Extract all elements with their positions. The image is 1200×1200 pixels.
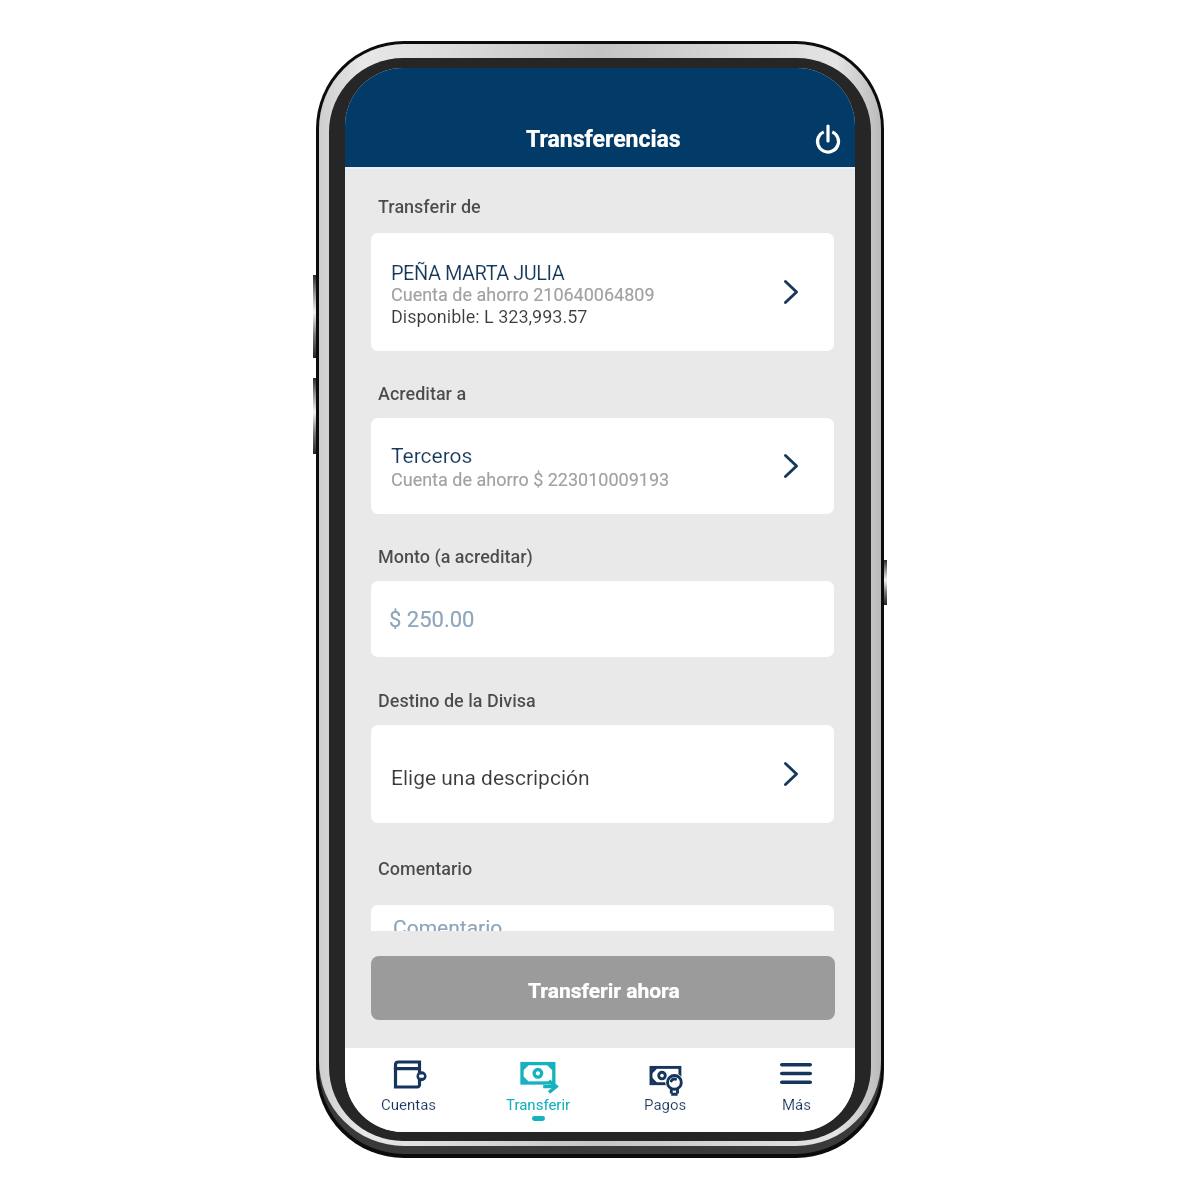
staticText: Cuenta de ahorro 210640064809	[391, 284, 655, 305]
staticText: Comentario	[378, 858, 473, 879]
staticText: Cuenta de ahorro $ 223010009193	[391, 469, 670, 490]
staticText: Elige una descripción	[391, 766, 590, 791]
button[interactable]: Cuentas	[345, 1048, 473, 1132]
button[interactable]: Cerrar sesión	[811, 120, 845, 154]
staticText: Acreditar a	[378, 383, 467, 404]
button[interactable]: Comentario	[371, 905, 834, 931]
staticText: Cuentas	[381, 1096, 437, 1114]
button[interactable]: PEÑA MARTA JULIA	[371, 233, 834, 351]
button[interactable]: Terceros	[371, 418, 834, 514]
button[interactable]: Transferir	[474, 1048, 602, 1132]
staticText: $ 250.00	[389, 607, 475, 633]
staticText: PEÑA MARTA JULIA	[391, 261, 565, 284]
staticText: Transferir de	[378, 196, 481, 217]
staticText: Transferir	[506, 1096, 571, 1114]
staticText: Monto (a acreditar)	[378, 546, 533, 567]
staticText: Destino de la Divisa	[378, 690, 536, 711]
button[interactable]: $ 250.00	[371, 581, 834, 657]
staticText: Transferir ahora	[528, 979, 680, 1004]
staticText: Más	[782, 1096, 811, 1114]
staticText: Terceros	[391, 444, 473, 469]
button[interactable]: Más	[732, 1048, 855, 1132]
staticText: Disponible: L 323,993.57	[391, 306, 588, 327]
button[interactable]: Pagos	[601, 1048, 729, 1132]
staticText: Pagos	[644, 1096, 687, 1114]
button[interactable]: Elige una descripción	[371, 725, 834, 823]
button[interactable]: Transferir ahora	[371, 956, 835, 1020]
staticText: Transferencias	[526, 126, 681, 153]
staticText: Comentario	[393, 916, 503, 931]
